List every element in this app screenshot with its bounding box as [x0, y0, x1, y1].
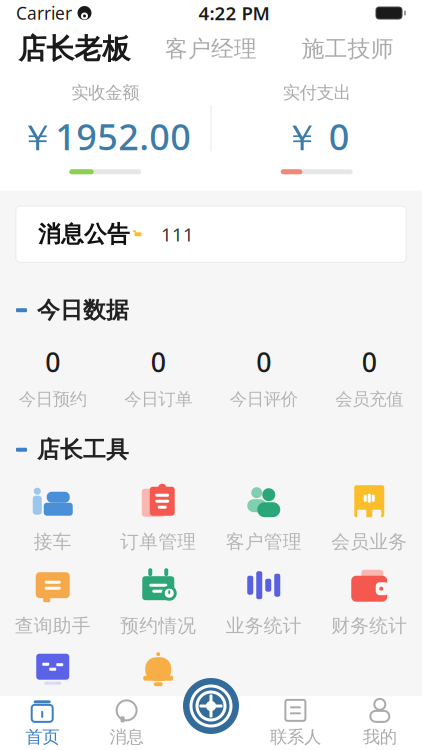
staticText: 店长工具: [37, 436, 129, 464]
staticText: Carrier: [16, 1, 72, 24]
staticText: 0: [256, 344, 271, 379]
staticText: 施工技师: [302, 35, 394, 63]
staticText: 会员业务: [331, 530, 407, 553]
button[interactable]: 联系人: [253, 698, 338, 748]
staticText: 首页: [25, 726, 59, 748]
button[interactable]: 预约情况: [105, 560, 211, 644]
button[interactable]: 消息: [84, 698, 169, 748]
button[interactable]: 查询助手: [0, 560, 105, 644]
staticText: 今日数据: [37, 296, 129, 324]
button[interactable]: 检测中心: [0, 644, 105, 728]
staticText: 4:22 PM: [198, 1, 269, 25]
button[interactable]: 消息公告: [16, 206, 406, 262]
button[interactable]: 快捷操作: [183, 678, 239, 734]
staticText: 会员充值: [335, 388, 403, 410]
staticText: 111: [161, 222, 194, 247]
staticText: 今日订单: [124, 388, 192, 410]
button[interactable]: 0: [211, 344, 316, 410]
button[interactable]: 店长老板: [6, 32, 143, 66]
button[interactable]: 接车: [0, 476, 105, 560]
button[interactable]: 业务统计: [211, 560, 316, 644]
button[interactable]: 客户管理: [211, 476, 316, 560]
staticText: 联系人: [270, 726, 321, 748]
staticText: 我的: [363, 726, 397, 748]
button[interactable]: 0: [316, 344, 422, 410]
staticText: 客户管理: [226, 530, 302, 553]
staticText: 消息公告: [38, 220, 130, 248]
staticText: 接车: [34, 530, 72, 553]
button[interactable]: 业务提醒: [105, 644, 211, 728]
staticText: ￥ 0: [284, 112, 350, 160]
button[interactable]: 0: [105, 344, 211, 410]
staticText: 0: [151, 344, 166, 379]
staticText: 实付支出: [283, 82, 351, 103]
staticText: 0: [362, 344, 377, 379]
staticText: 预约情况: [120, 614, 196, 637]
staticText: 实收金额: [71, 82, 139, 103]
staticText: 店长老板: [18, 32, 130, 66]
button[interactable]: 财务统计: [316, 560, 422, 644]
staticText: 检测中心: [15, 698, 91, 721]
button[interactable]: 施工技师: [279, 35, 416, 63]
staticText: 0: [45, 344, 60, 379]
staticText: 订单管理: [120, 530, 196, 553]
button[interactable]: 我的: [338, 698, 422, 748]
button[interactable]: 首页: [0, 698, 84, 748]
staticText: 业务统计: [226, 614, 302, 637]
staticText: 业务提醒: [120, 698, 196, 721]
staticText: 今日评价: [230, 388, 298, 410]
staticText: 客户经理: [165, 35, 257, 63]
button[interactable]: 会员业务: [316, 476, 422, 560]
button[interactable]: 客户经理: [143, 35, 279, 63]
staticText: 今日预约: [19, 388, 87, 410]
button[interactable]: 订单管理: [105, 476, 211, 560]
button[interactable]: 0: [0, 344, 105, 410]
staticText: ￥1952.00: [19, 112, 191, 160]
staticText: 消息: [110, 726, 144, 748]
staticText: 查询助手: [15, 614, 91, 637]
staticText: 财务统计: [331, 614, 407, 637]
